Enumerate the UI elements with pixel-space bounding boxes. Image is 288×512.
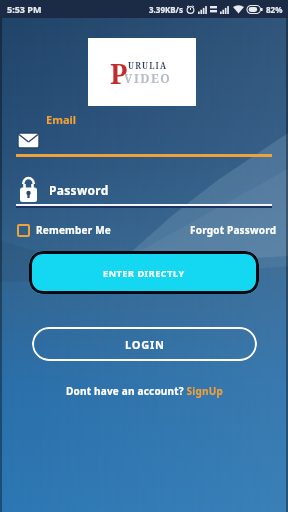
button[interactable]: ENTER DIRECTLY <box>29 251 259 294</box>
staticText: Dont have an account? SignUp <box>66 384 223 398</box>
staticText: 82% <box>266 4 283 15</box>
button[interactable]: Forgot Password <box>190 222 277 238</box>
staticText: ENTER DIRECTLY <box>103 267 185 279</box>
staticText: 3.39KB/s <box>149 4 183 15</box>
button[interactable]: LOGIN <box>32 327 257 361</box>
staticText: Forgot Password <box>190 223 277 237</box>
button[interactable]: Dont have an account? SignUp <box>0 384 288 398</box>
staticText: LOGIN <box>125 337 165 352</box>
staticText: 5:53 PM <box>7 3 42 15</box>
staticText: Remember Me <box>36 223 111 237</box>
staticText: Email <box>46 112 77 127</box>
button[interactable]: Remember Me <box>17 222 111 238</box>
staticText: VIDEO <box>124 70 172 86</box>
staticText: P <box>110 55 128 92</box>
staticText: URULIA <box>128 60 168 71</box>
staticText: Password <box>49 182 109 198</box>
